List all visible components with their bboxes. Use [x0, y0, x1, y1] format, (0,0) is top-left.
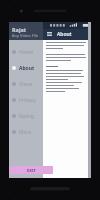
- staticText: Home: [19, 49, 34, 56]
- staticText: About: [57, 31, 72, 38]
- staticText: About: [19, 65, 35, 72]
- button[interactable]: Share: [9, 76, 43, 92]
- staticText: Share: [19, 81, 33, 88]
- button[interactable]: Home: [9, 44, 43, 60]
- button[interactable]: About: [9, 60, 43, 76]
- button[interactable]: EXIT: [9, 166, 53, 174]
- button[interactable]: Open navigation drawer: [45, 30, 54, 39]
- staticText: Privacy: [19, 97, 36, 104]
- staticText: Rating: [19, 113, 35, 120]
- button[interactable]: Rating: [9, 108, 43, 124]
- button[interactable]: More Apps: [9, 124, 43, 140]
- staticText: Rajat Studio: [12, 26, 43, 33]
- staticText: EXIT: [27, 168, 36, 173]
- staticText: Any Video File: [12, 33, 39, 38]
- button[interactable]: Privacy: [9, 92, 43, 108]
- staticText: More Apps: [19, 129, 43, 136]
